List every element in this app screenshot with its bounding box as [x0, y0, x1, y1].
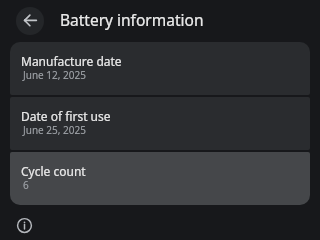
button[interactable]: Back [16, 7, 44, 35]
staticText: Cycle count [21, 163, 86, 179]
button[interactable]: Information [13, 214, 36, 237]
staticText: June 25, 2025 [23, 123, 86, 137]
staticText: Date of first use [21, 108, 111, 124]
staticText: Battery information [60, 9, 204, 30]
button[interactable]: Date of first use [10, 97, 310, 150]
button[interactable]: Cycle count [10, 152, 310, 205]
staticText: Manufacture date [21, 53, 122, 69]
staticText: 6 [23, 178, 29, 192]
button[interactable]: Manufacture date [10, 42, 310, 95]
staticText: June 12, 2025 [23, 68, 86, 82]
